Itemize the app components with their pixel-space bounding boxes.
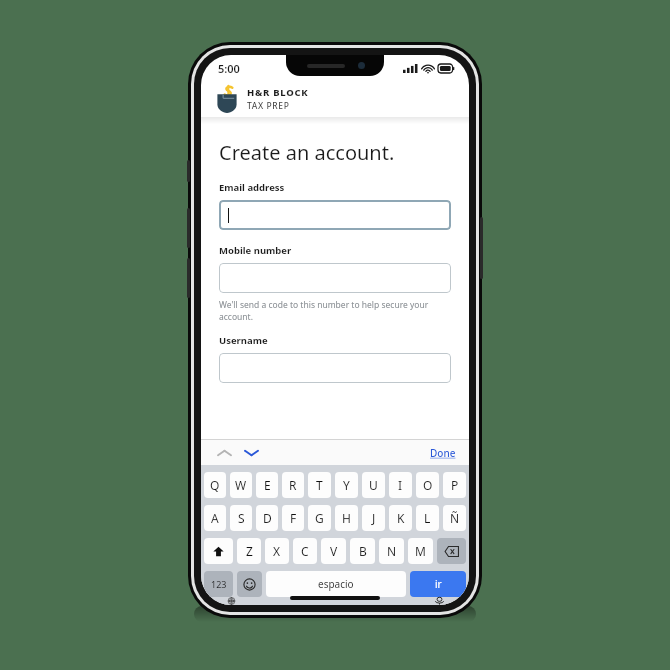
staticText: Mobile number bbox=[219, 244, 292, 257]
staticText: J bbox=[372, 510, 376, 526]
button[interactable]: Dictation bbox=[426, 597, 452, 605]
button[interactable]: E bbox=[256, 472, 278, 498]
button[interactable]: Y bbox=[335, 472, 358, 498]
staticText: Done bbox=[430, 446, 456, 460]
button[interactable]: M bbox=[408, 538, 433, 564]
button[interactable]: I bbox=[389, 472, 412, 498]
staticText: 123 bbox=[211, 578, 227, 590]
staticText: Z bbox=[246, 543, 253, 559]
button[interactable]: S bbox=[230, 505, 252, 531]
staticText: S bbox=[238, 510, 245, 526]
button[interactable]: W bbox=[230, 472, 252, 498]
button[interactable]: Previous field bbox=[214, 443, 234, 463]
staticText: Q bbox=[210, 477, 220, 493]
button[interactable]: Switch keyboard language bbox=[218, 597, 244, 605]
staticText: espacio bbox=[318, 577, 354, 591]
button[interactable]: ir bbox=[410, 571, 466, 597]
button[interactable]: A bbox=[204, 505, 226, 531]
staticText: Username bbox=[219, 334, 268, 347]
button[interactable]: Ñ bbox=[443, 505, 466, 531]
staticText: F bbox=[290, 510, 297, 526]
button[interactable] bbox=[219, 263, 451, 293]
staticText: N bbox=[387, 543, 397, 559]
button[interactable]: B bbox=[350, 538, 375, 564]
button[interactable]: Done bbox=[417, 442, 469, 464]
button[interactable]: Z bbox=[237, 538, 261, 564]
button[interactable]: N bbox=[379, 538, 404, 564]
button[interactable]: Backspace bbox=[437, 538, 466, 564]
staticText: Y bbox=[343, 477, 350, 493]
staticText: W bbox=[235, 477, 247, 493]
staticText: We'll send a code to this number to help… bbox=[219, 299, 451, 323]
button[interactable] bbox=[219, 200, 451, 230]
button[interactable]: Shift bbox=[204, 538, 233, 564]
button[interactable]: 123 bbox=[204, 571, 233, 597]
staticText: I bbox=[398, 477, 403, 493]
staticText: H&R BLOCK bbox=[247, 86, 309, 99]
staticText: R bbox=[289, 477, 297, 493]
staticText: TAX PREP bbox=[247, 100, 290, 112]
staticText: O bbox=[423, 477, 433, 493]
staticText: E bbox=[264, 477, 271, 493]
button[interactable]: O bbox=[416, 472, 439, 498]
button[interactable]: H bbox=[335, 505, 358, 531]
staticText: X bbox=[273, 543, 281, 559]
staticText: K bbox=[397, 510, 405, 526]
staticText: Ñ bbox=[450, 510, 460, 526]
button[interactable]: F bbox=[282, 505, 304, 531]
button[interactable] bbox=[219, 353, 451, 383]
button[interactable]: Next field bbox=[241, 443, 261, 463]
button[interactable]: R bbox=[282, 472, 304, 498]
staticText: 5:00 bbox=[218, 61, 240, 76]
staticText: H bbox=[342, 510, 351, 526]
button[interactable]: C bbox=[293, 538, 317, 564]
button[interactable]: L bbox=[416, 505, 439, 531]
staticText: V bbox=[330, 543, 338, 559]
button[interactable]: U bbox=[362, 472, 385, 498]
button[interactable]: D bbox=[256, 505, 278, 531]
button[interactable]: T bbox=[308, 472, 331, 498]
staticText: C bbox=[301, 543, 309, 559]
button[interactable]: X bbox=[265, 538, 289, 564]
button[interactable]: K bbox=[389, 505, 412, 531]
staticText: G bbox=[315, 510, 324, 526]
staticText: Create an account. bbox=[219, 139, 395, 166]
button[interactable]: V bbox=[321, 538, 346, 564]
button[interactable]: Q bbox=[204, 472, 226, 498]
button[interactable]: Emoji bbox=[237, 571, 262, 597]
button[interactable]: espacio bbox=[266, 571, 406, 597]
button[interactable]: J bbox=[362, 505, 385, 531]
staticText: D bbox=[263, 510, 272, 526]
staticText: P bbox=[451, 477, 459, 493]
staticText: B bbox=[359, 543, 367, 559]
staticText: U bbox=[369, 477, 378, 493]
staticText: T bbox=[316, 477, 323, 493]
button[interactable]: G bbox=[308, 505, 331, 531]
staticText: ir bbox=[435, 577, 442, 591]
staticText: A bbox=[211, 510, 219, 526]
staticText: L bbox=[424, 510, 431, 526]
staticText: M bbox=[415, 543, 426, 559]
staticText: Email address bbox=[219, 181, 285, 194]
button[interactable]: P bbox=[443, 472, 466, 498]
